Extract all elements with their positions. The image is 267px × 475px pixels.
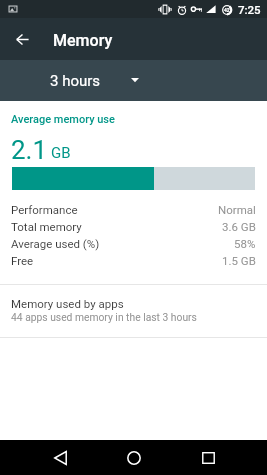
staticText: 58%: [234, 237, 256, 250]
button[interactable]: Memory used by apps: [0, 285, 267, 337]
staticText: GB: [51, 144, 71, 162]
button[interactable]: Recent apps: [191, 441, 225, 475]
button[interactable]: Home: [117, 441, 151, 475]
button[interactable]: Back: [43, 441, 77, 475]
staticText: 44 apps used memory in the last 3 hours: [11, 311, 197, 323]
staticText: Normal: [218, 203, 256, 216]
staticText: Average used (%): [11, 237, 100, 250]
staticText: 2.1: [11, 135, 48, 165]
staticText: Free: [11, 254, 34, 267]
staticText: 3 hours: [50, 72, 101, 90]
staticText: 42: [224, 7, 230, 13]
staticText: 1.5 GB: [222, 254, 256, 267]
staticText: Average memory use: [11, 113, 115, 126]
staticText: Performance: [11, 203, 78, 216]
staticText: Memory used by apps: [11, 297, 124, 310]
button[interactable]: Navigate up: [2, 19, 42, 59]
staticText: Memory: [53, 31, 113, 50]
button[interactable]: 3 hours: [44, 64, 141, 98]
staticText: 7:25: [238, 3, 261, 16]
staticText: Total memory: [11, 220, 82, 233]
staticText: 3.6 GB: [222, 220, 256, 233]
